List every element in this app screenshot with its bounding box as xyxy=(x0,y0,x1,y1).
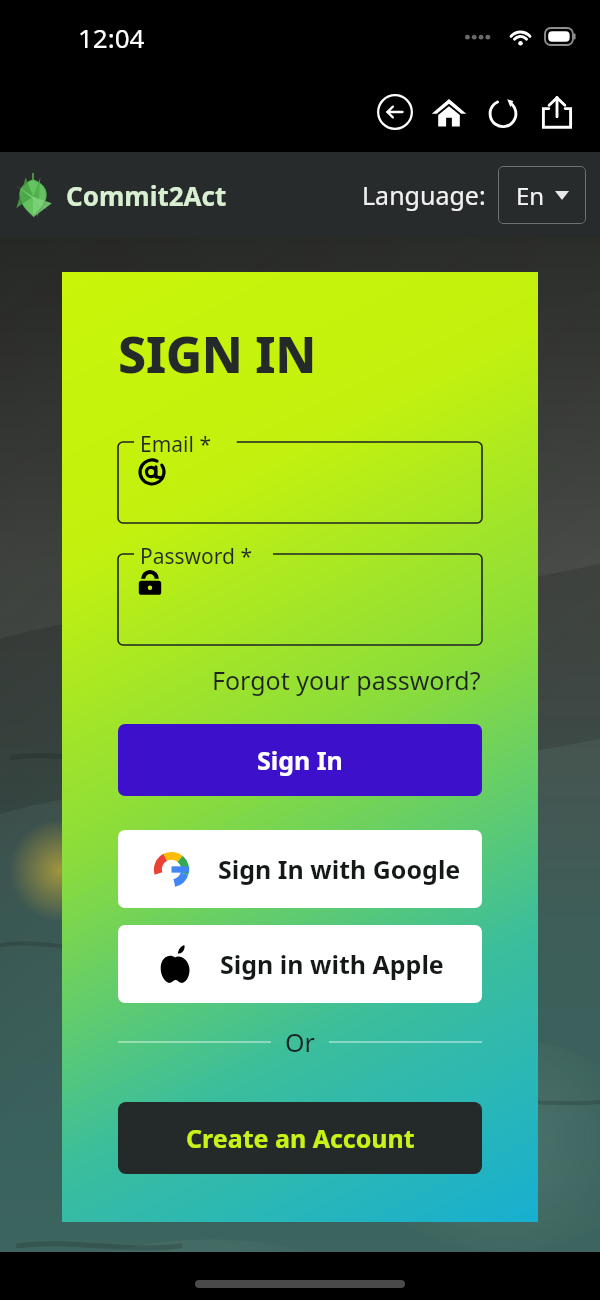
button[interactable]: Share xyxy=(530,85,584,139)
button[interactable]: Create an Account xyxy=(118,1102,482,1174)
staticText: Forgot your password? xyxy=(212,663,481,697)
button[interactable]: Sign In with Google xyxy=(118,830,482,908)
button[interactable]: En xyxy=(498,166,586,224)
staticText: 12:04 xyxy=(78,20,145,55)
button[interactable]: Sign In xyxy=(118,724,482,796)
staticText: SIGN IN xyxy=(118,320,316,388)
staticText: Sign In xyxy=(257,743,343,777)
staticText: Language: xyxy=(362,178,486,212)
staticText: Create an Account xyxy=(186,1121,415,1155)
staticText: Email * xyxy=(140,430,211,459)
staticText: En xyxy=(516,179,545,212)
staticText: Password * xyxy=(140,542,253,571)
button[interactable]: Back xyxy=(368,85,422,139)
button[interactable]: Email * xyxy=(118,433,482,523)
staticText: Or xyxy=(285,1025,315,1059)
button[interactable]: Sign in with Apple xyxy=(118,925,482,1003)
button[interactable]: Home xyxy=(422,85,476,139)
staticText: Sign in with Apple xyxy=(220,947,444,981)
button[interactable]: Password * xyxy=(118,545,482,645)
button[interactable]: Forgot your password? xyxy=(118,663,482,697)
staticText: Commit2Act xyxy=(66,178,227,213)
button[interactable]: Reload xyxy=(476,85,530,139)
staticText: Sign In with Google xyxy=(218,852,461,886)
